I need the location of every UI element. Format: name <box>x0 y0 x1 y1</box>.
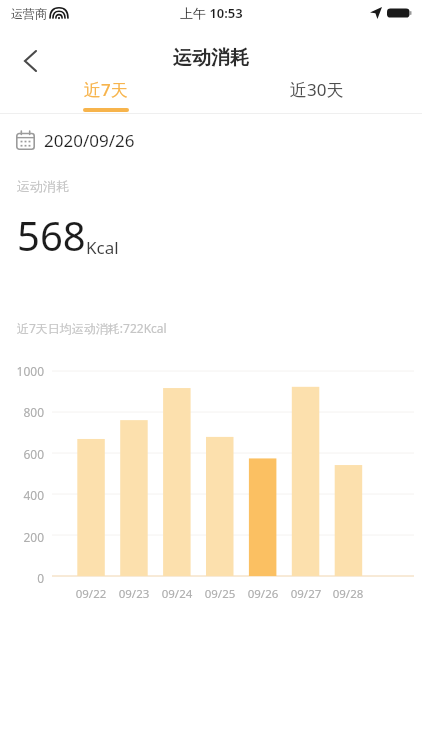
staticText: 运动消耗 <box>17 178 69 194</box>
staticText: 09/28 <box>325 586 371 602</box>
button[interactable]: 近30天 <box>211 72 422 114</box>
staticText: 近7天日均运动消耗:722Kcal <box>17 320 167 336</box>
button[interactable]: 近7天 <box>0 72 211 114</box>
staticText: 400 <box>0 487 44 503</box>
staticText: 运动消耗 <box>173 46 249 70</box>
staticText: 09/23 <box>111 586 157 602</box>
staticText: Kcal <box>86 236 119 259</box>
staticText: 09/27 <box>283 586 329 602</box>
staticText: 上午 10:53 <box>180 4 243 22</box>
staticText: 1000 <box>0 363 44 379</box>
staticText: 568 <box>17 208 86 262</box>
staticText: 09/22 <box>68 586 114 602</box>
staticText: 09/25 <box>197 586 243 602</box>
button[interactable]: Back <box>8 39 52 83</box>
staticText: 运营商 <box>11 6 47 21</box>
staticText: 200 <box>0 529 44 545</box>
staticText: 近30天 <box>290 78 344 101</box>
staticText: 800 <box>0 404 44 420</box>
staticText: 近7天 <box>84 78 128 101</box>
staticText: 09/26 <box>240 586 286 602</box>
staticText: 0 <box>0 570 44 586</box>
staticText: 600 <box>0 446 44 462</box>
staticText: 09/24 <box>154 586 200 602</box>
staticText: 2020/09/26 <box>44 129 135 152</box>
